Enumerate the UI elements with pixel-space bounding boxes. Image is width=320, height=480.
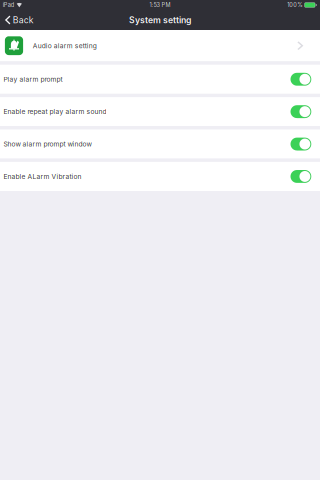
button[interactable]: Enable repeat play alarm sound	[0, 97, 320, 126]
staticText: iPad	[3, 2, 14, 8]
staticText: System setting	[129, 15, 191, 25]
button[interactable]: Back	[0, 10, 40, 30]
staticText: Play alarm prompt	[3, 75, 62, 83]
button[interactable]: Enable ALarm Vibration	[0, 162, 320, 191]
button[interactable]: Audio alarm setting	[0, 30, 320, 61]
staticText: 1:53 PM	[149, 2, 170, 8]
button[interactable]: Play alarm prompt	[0, 65, 320, 94]
staticText: Back	[13, 15, 34, 25]
staticText: 100%	[287, 2, 302, 8]
button[interactable]: Show alarm prompt window	[0, 129, 320, 159]
staticText: Enable repeat play alarm sound	[3, 108, 106, 116]
staticText: Audio alarm setting	[33, 42, 97, 50]
staticText: Enable ALarm Vibration	[3, 172, 81, 180]
staticText: Show alarm prompt window	[3, 140, 91, 148]
